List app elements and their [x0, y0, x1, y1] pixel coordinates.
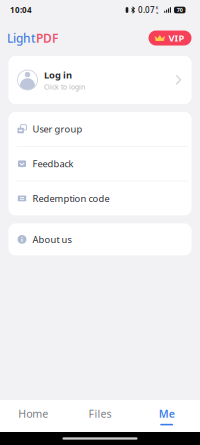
button[interactable]: Files	[67, 400, 133, 432]
button[interactable]: Feedback	[8, 147, 191, 181]
staticText: 70	[177, 6, 183, 14]
staticText: Feedback	[32, 157, 73, 170]
staticText: Me	[159, 407, 175, 421]
button[interactable]: About us	[8, 223, 191, 255]
staticText: K	[156, 5, 159, 10]
button[interactable]: Log in	[8, 56, 191, 104]
staticText: 0.07	[138, 5, 155, 15]
staticText: Light	[7, 30, 36, 46]
staticText: s	[156, 10, 158, 15]
staticText: User group	[32, 123, 82, 135]
button[interactable]: VIP	[148, 30, 191, 45]
staticText: 10:04	[10, 5, 32, 15]
staticText: VIP	[168, 32, 184, 44]
staticText: Click to login	[44, 82, 85, 91]
button[interactable]: Redemption code	[8, 181, 191, 215]
button[interactable]: Me	[133, 400, 200, 432]
staticText: About us	[32, 233, 71, 246]
staticText: PDF	[36, 30, 58, 46]
staticText: Files	[88, 407, 111, 421]
button[interactable]: User group	[8, 112, 191, 146]
button[interactable]: Home	[0, 400, 67, 432]
staticText: Redemption code	[32, 192, 109, 205]
staticText: Log in	[44, 69, 72, 81]
staticText: Home	[18, 407, 48, 421]
